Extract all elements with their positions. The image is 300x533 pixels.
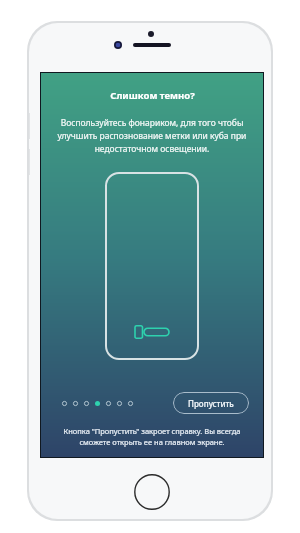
button[interactable]: Пропустить [173,392,249,414]
other: Home [134,474,170,510]
other: Flashlight [135,324,169,340]
staticText: Кнопка "Пропустить" закроет справку. Вы … [49,426,255,447]
staticText: Воспользуйтесь фонариком, для того чтобы… [53,117,251,155]
staticText: Слишком темно? [110,89,195,102]
staticText: Пропустить [188,398,234,409]
